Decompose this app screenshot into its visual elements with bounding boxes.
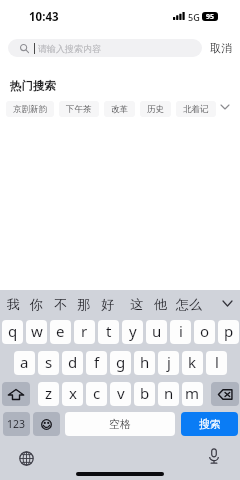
button[interactable]: c (86, 382, 107, 406)
staticText: x (69, 383, 77, 403)
staticText: 5G (188, 11, 200, 23)
staticText: 改革 (111, 104, 128, 115)
button[interactable]: z (38, 382, 59, 406)
button[interactable]: u (146, 320, 167, 344)
button[interactable]: Emoji (33, 412, 60, 436)
button[interactable]: 这 (126, 291, 146, 315)
staticText: 请输入搜索内容 (38, 43, 101, 54)
button[interactable]: 空格 (65, 412, 175, 436)
staticText: n (164, 383, 174, 403)
staticText: 我 (7, 296, 20, 312)
button[interactable]: 他 (150, 291, 170, 315)
button[interactable]: y (122, 320, 143, 344)
staticText: 下午茶 (66, 104, 92, 115)
staticText: s (45, 352, 53, 372)
button[interactable]: m (182, 382, 203, 406)
staticText: i (179, 321, 183, 341)
button[interactable]: b (134, 382, 155, 406)
button[interactable]: w (26, 320, 47, 344)
staticText: 那 (77, 296, 90, 312)
staticText: c (93, 383, 101, 403)
staticText: 历史 (147, 104, 164, 115)
staticText: 95 (206, 12, 215, 21)
button[interactable]: g (110, 351, 131, 375)
button[interactable]: 我 (3, 291, 23, 315)
staticText: g (116, 352, 126, 372)
staticText: 热门搜索 (10, 79, 56, 93)
button[interactable]: 搜索 (181, 412, 238, 436)
staticText: 好 (101, 296, 114, 312)
button[interactable]: q (2, 320, 23, 344)
button[interactable]: 请输入搜索内容 (8, 39, 202, 57)
button[interactable]: 你 (26, 291, 46, 315)
staticText: 京剧新韵 (13, 104, 47, 115)
staticText: h (140, 352, 150, 372)
button[interactable]: 那 (73, 291, 93, 315)
button[interactable]: More candidates (217, 291, 237, 315)
staticText: o (200, 321, 210, 341)
staticText: 取消 (210, 41, 232, 55)
button[interactable]: 历史 (140, 101, 171, 117)
staticText: z (45, 383, 53, 403)
button[interactable]: Expand hot searches (217, 99, 233, 115)
button[interactable]: f (86, 351, 107, 375)
button[interactable]: n (158, 382, 179, 406)
staticText: m (185, 383, 200, 403)
button[interactable]: t (98, 320, 119, 344)
button[interactable]: 不 (50, 291, 70, 315)
button[interactable]: 好 (97, 291, 117, 315)
staticText: 搜索 (199, 417, 221, 431)
staticText: k (188, 352, 197, 372)
staticText: q (8, 321, 18, 341)
staticText: 你 (30, 296, 43, 312)
staticText: y (129, 321, 137, 341)
staticText: v (117, 383, 125, 403)
button[interactable]: 改革 (104, 101, 135, 117)
button[interactable]: l (206, 351, 227, 375)
button[interactable]: 京剧新韵 (6, 101, 54, 117)
button[interactable]: d (62, 351, 83, 375)
button[interactable]: k (182, 351, 203, 375)
button[interactable]: i (170, 320, 191, 344)
staticText: 不 (54, 296, 67, 312)
staticText: 怎么 (176, 296, 202, 312)
button[interactable]: r (74, 320, 95, 344)
button[interactable]: a (14, 351, 35, 375)
staticText: a (20, 352, 29, 372)
staticText: 北着记 (183, 104, 209, 115)
staticText: e (56, 321, 65, 341)
button[interactable]: v (110, 382, 131, 406)
button[interactable]: Backspace (211, 382, 239, 406)
staticText: 这 (130, 296, 143, 312)
staticText: 空格 (109, 417, 131, 431)
staticText: b (140, 383, 150, 403)
button[interactable]: p (218, 320, 239, 344)
button[interactable]: o (194, 320, 215, 344)
staticText: w (31, 321, 43, 341)
staticText: 他 (154, 296, 167, 312)
button[interactable]: x (62, 382, 83, 406)
staticText: j (167, 352, 171, 372)
staticText: p (224, 321, 234, 341)
staticText: l (215, 352, 219, 372)
button[interactable]: Shift (2, 382, 30, 406)
staticText: u (152, 321, 162, 341)
button[interactable]: Voice input (206, 448, 222, 464)
button[interactable]: j (158, 351, 179, 375)
staticText: r (81, 321, 88, 341)
button[interactable]: 北着记 (176, 101, 216, 117)
button[interactable]: 下午茶 (59, 101, 99, 117)
button[interactable]: 123 (3, 412, 30, 436)
staticText: t (106, 321, 112, 341)
button[interactable]: 怎么 (174, 291, 204, 315)
button[interactable]: e (50, 320, 71, 344)
staticText: 10:43 (29, 9, 59, 25)
button[interactable]: h (134, 351, 155, 375)
staticText: 123 (7, 417, 26, 431)
staticText: f (94, 352, 100, 372)
button[interactable]: s (38, 351, 59, 375)
staticText: d (68, 352, 78, 372)
button[interactable]: Change keyboard (18, 450, 34, 466)
button[interactable]: 取消 (206, 39, 236, 57)
